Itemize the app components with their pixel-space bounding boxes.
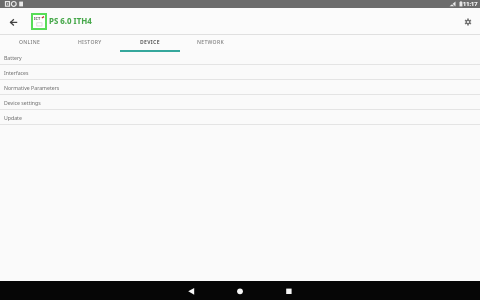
button[interactable] <box>0 8 27 34</box>
staticText: ONLINE <box>19 39 41 46</box>
staticText: Update <box>4 114 22 121</box>
button[interactable]: Update <box>0 110 480 125</box>
staticText: 11:17 <box>463 0 478 8</box>
button[interactable]: DEVICE <box>120 35 180 50</box>
button[interactable] <box>269 281 309 300</box>
button[interactable] <box>220 281 260 300</box>
staticText: Device settings <box>4 99 41 106</box>
button[interactable]: HISTORY <box>60 35 120 50</box>
staticText: Normative Parameters <box>4 84 60 91</box>
staticText: NETWORK <box>197 39 224 46</box>
button[interactable]: Battery <box>0 50 480 65</box>
button[interactable]: NETWORK <box>180 35 240 50</box>
staticText: Interfaces <box>4 69 29 76</box>
button[interactable]: Device settings <box>0 95 480 110</box>
button[interactable] <box>171 281 211 300</box>
button[interactable]: Interfaces <box>0 65 480 80</box>
staticText: ICT <box>34 16 41 21</box>
button[interactable] <box>456 8 480 34</box>
staticText: HISTORY <box>78 39 102 46</box>
button[interactable]: Normative Parameters <box>0 80 480 95</box>
staticText: PS 6.0 ITH4 <box>49 16 92 27</box>
staticText: DEVICE <box>140 39 160 46</box>
button[interactable]: ONLINE <box>0 35 60 50</box>
staticText: Battery <box>4 54 22 61</box>
